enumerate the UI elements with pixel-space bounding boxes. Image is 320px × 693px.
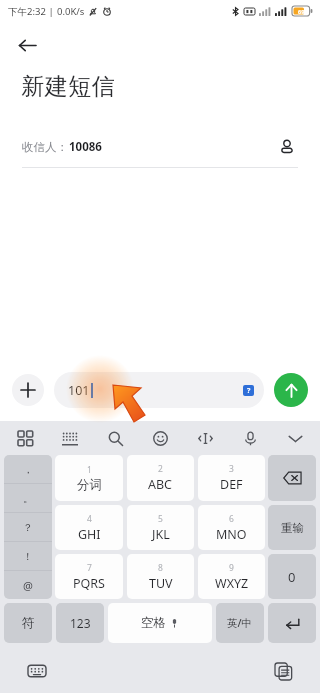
button[interactable]: Hide keyboard: [22, 656, 52, 686]
staticText: 3: [229, 463, 234, 475]
button[interactable]: 7: [55, 554, 123, 599]
button[interactable]: Keyboard layout: [55, 423, 85, 453]
staticText: 4: [87, 513, 92, 525]
staticText: 。: [23, 492, 33, 505]
button[interactable]: Emoji: [145, 423, 175, 453]
button[interactable]: 空格: [108, 603, 212, 643]
staticText: MNO: [216, 526, 247, 543]
button[interactable]: 英/中: [216, 603, 264, 643]
staticText: ABC: [148, 476, 173, 493]
staticText: 英/中: [227, 616, 253, 630]
staticText: ，: [23, 463, 33, 476]
staticText: 6: [229, 513, 234, 525]
staticText: 分词: [77, 477, 102, 493]
staticText: 0.0K/s: [57, 5, 85, 18]
button[interactable]: Voice input: [235, 423, 265, 453]
button[interactable]: 符: [4, 603, 52, 643]
staticText: ?: [247, 386, 251, 396]
staticText: 9: [229, 562, 234, 574]
button[interactable]: 2: [127, 455, 194, 501]
staticText: 新建短信: [21, 72, 115, 101]
button[interactable]: 收信人：: [0, 127, 320, 167]
button[interactable]: @: [4, 571, 52, 599]
button[interactable]: Recent apps: [268, 656, 298, 686]
staticText: 1: [87, 464, 92, 476]
staticText: GHI: [78, 526, 101, 543]
staticText: 69: [298, 8, 305, 15]
button[interactable]: 6: [198, 505, 265, 550]
button[interactable]: ！: [4, 542, 52, 570]
button[interactable]: Enter: [268, 603, 316, 643]
staticText: 0: [288, 568, 296, 586]
staticText: 收信人：: [22, 140, 68, 154]
button[interactable]: 。: [4, 484, 52, 512]
staticText: 下午2:32: [8, 5, 46, 18]
button[interactable]: ？: [4, 513, 52, 541]
staticText: 101: [68, 382, 90, 399]
button[interactable]: 9: [198, 554, 265, 599]
staticText: 7: [87, 562, 92, 574]
staticText: JKL: [152, 526, 170, 543]
button[interactable]: Search: [100, 423, 130, 453]
button[interactable]: Back: [10, 28, 44, 62]
button[interactable]: 101: [54, 372, 264, 408]
button[interactable]: 5: [127, 505, 194, 550]
staticText: 8: [158, 562, 163, 574]
staticText: 10086: [69, 139, 102, 155]
staticText: |: [46, 5, 57, 18]
button[interactable]: 3: [198, 455, 265, 501]
button[interactable]: ，: [4, 455, 52, 483]
staticText: 2: [158, 463, 163, 475]
button[interactable]: Hide keyboard: [280, 423, 310, 453]
staticText: PQRS: [73, 575, 105, 592]
button[interactable]: 重输: [268, 505, 316, 550]
staticText: 空格: [141, 615, 166, 631]
staticText: 重输: [281, 521, 304, 535]
button[interactable]: Add attachment: [12, 374, 44, 406]
staticText: 5: [158, 513, 163, 525]
staticText: 符: [22, 615, 35, 631]
button[interactable]: 4: [55, 505, 123, 550]
staticText: 123: [70, 615, 91, 631]
staticText: DEF: [220, 476, 243, 493]
staticText: ？: [23, 521, 33, 534]
staticText: ！: [23, 550, 33, 563]
button[interactable]: Panels: [10, 423, 40, 453]
staticText: TUV: [149, 575, 173, 592]
button[interactable]: Send: [274, 373, 308, 407]
button[interactable]: 8: [127, 554, 194, 599]
staticText: @: [23, 578, 33, 593]
staticText: WXYZ: [215, 575, 249, 592]
button[interactable]: Text editing: [190, 423, 220, 453]
button[interactable]: Choose contact: [272, 132, 302, 162]
button[interactable]: Backspace: [268, 455, 316, 501]
button[interactable]: 1: [55, 455, 123, 501]
button[interactable]: 0: [268, 554, 316, 599]
button[interactable]: 123: [56, 603, 104, 643]
